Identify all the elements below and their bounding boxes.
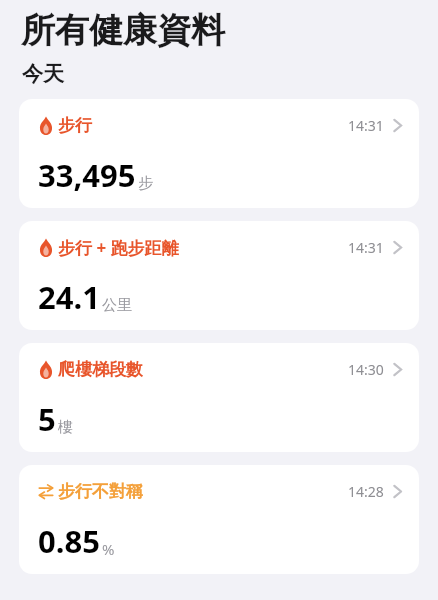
staticText: 14:31 (348, 238, 384, 257)
staticText: 14:31 (348, 116, 384, 135)
staticText: 33,495 (38, 154, 136, 196)
staticText: 14:28 (348, 482, 384, 501)
button[interactable]: 步行不對稱 (19, 465, 419, 574)
staticText: 24.1 (38, 276, 100, 318)
staticText: 公里 (102, 296, 132, 315)
other: 顯示更多 (393, 484, 402, 499)
button[interactable]: 步行 + 跑步距離 (19, 221, 419, 330)
staticText: 樓 (58, 418, 73, 437)
staticText: 步 (138, 174, 153, 193)
staticText: 0.85 (38, 520, 100, 562)
staticText: 14:30 (348, 360, 384, 379)
staticText: 步行 (58, 115, 92, 136)
staticText: 爬樓梯段數 (58, 359, 143, 380)
staticText: 步行不對稱 (58, 481, 143, 502)
staticText: 步行 + 跑步距離 (58, 236, 179, 259)
other: 顯示更多 (393, 118, 402, 133)
staticText: 5 (38, 398, 56, 440)
other: 顯示更多 (393, 240, 402, 255)
staticText: 今天 (22, 61, 64, 87)
other: 顯示更多 (393, 362, 402, 377)
button[interactable]: 爬樓梯段數 (19, 343, 419, 452)
button[interactable]: 步行 (19, 99, 419, 208)
staticText: % (102, 539, 115, 559)
staticText: 所有健康資料 (21, 9, 225, 52)
